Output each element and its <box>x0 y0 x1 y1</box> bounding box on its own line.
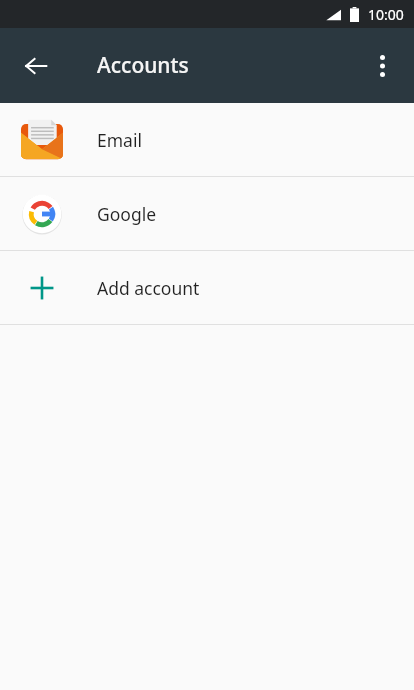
staticText: 10:00 <box>368 5 404 24</box>
button[interactable]: Back <box>10 40 62 92</box>
button[interactable]: Add account <box>0 251 414 324</box>
staticText: Accounts <box>97 51 189 80</box>
staticText: Email <box>97 128 142 152</box>
staticText: Add account <box>97 276 200 300</box>
staticText: Google <box>97 202 157 226</box>
button[interactable]: Email <box>0 103 414 176</box>
button[interactable]: Google <box>0 177 414 250</box>
button[interactable]: More options <box>358 42 406 90</box>
